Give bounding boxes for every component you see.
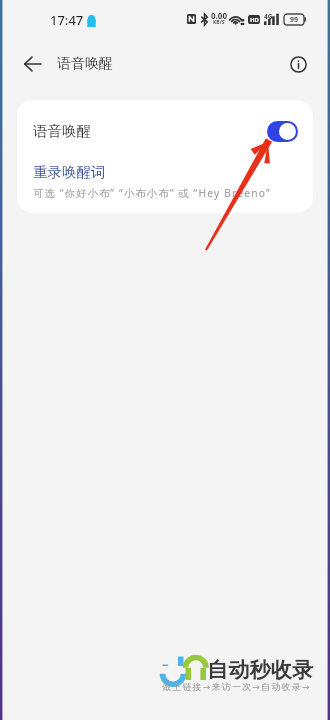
staticText: 99	[290, 15, 299, 25]
button[interactable]: Back	[16, 48, 48, 80]
button[interactable]: 重录唤醒词	[17, 163, 313, 200]
staticText: HD	[250, 16, 259, 24]
staticText: 4G	[264, 12, 273, 21]
staticText: 语音唤醒	[33, 122, 91, 140]
staticText: 17:47	[50, 11, 84, 29]
staticText: 可选 “你好小布” “小布小布” 或 “Hey Breeno”	[33, 186, 271, 200]
button[interactable]: Info	[283, 49, 313, 79]
button[interactable]: Voice wake toggle	[267, 121, 298, 142]
button[interactable]: 语音唤醒	[17, 100, 313, 162]
staticText: 做上链接→来访一次→自动收录→	[162, 681, 311, 692]
staticText: 重录唤醒词	[33, 163, 106, 181]
staticText: 语音唤醒	[57, 55, 113, 73]
staticText: 0.00	[211, 10, 227, 21]
staticText: KB/S	[213, 19, 225, 26]
staticText: 自动秒收录	[207, 657, 313, 683]
